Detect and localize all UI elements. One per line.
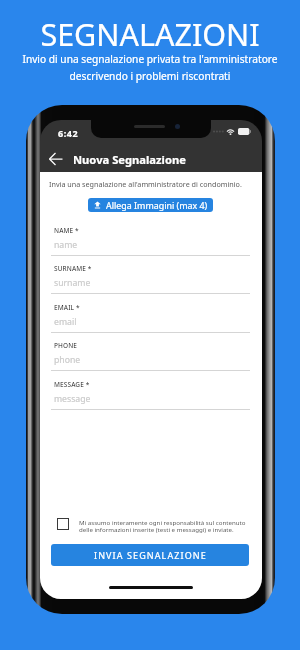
button[interactable]: Mi assumo interamente ogni responsabilit… xyxy=(57,518,262,534)
button[interactable]: Allega Immagini (max 4) xyxy=(88,198,213,212)
button[interactable]: INVIA SEGNALAZIONE xyxy=(51,544,249,566)
button[interactable]: Back xyxy=(44,147,68,171)
staticText: Mi assumo interamente ogni responsabilit… xyxy=(79,518,249,534)
staticText: email xyxy=(54,316,77,328)
staticText: INVIA SEGNALAZIONE xyxy=(94,549,207,561)
staticText: PHONE xyxy=(54,341,78,350)
staticText: EMAIL * xyxy=(54,303,80,312)
staticText: MESSAGE * xyxy=(54,380,90,389)
staticText: Allega Immagini (max 4) xyxy=(106,199,208,211)
staticText: SEGNALAZIONI xyxy=(0,13,300,55)
staticText: NAME * xyxy=(54,226,79,235)
staticText: Nuova Segnalazione xyxy=(73,152,186,167)
staticText: phone xyxy=(54,354,81,366)
staticText: SURNAME * xyxy=(54,264,92,273)
staticText: 6:42 xyxy=(58,127,79,139)
staticText: surname xyxy=(54,277,91,289)
staticText: Invia una segnalazione all'amministrator… xyxy=(49,179,242,189)
staticText: name xyxy=(54,239,78,251)
staticText: message xyxy=(54,393,91,405)
staticText: Invio di una segnalazione privata tra l'… xyxy=(0,52,300,83)
